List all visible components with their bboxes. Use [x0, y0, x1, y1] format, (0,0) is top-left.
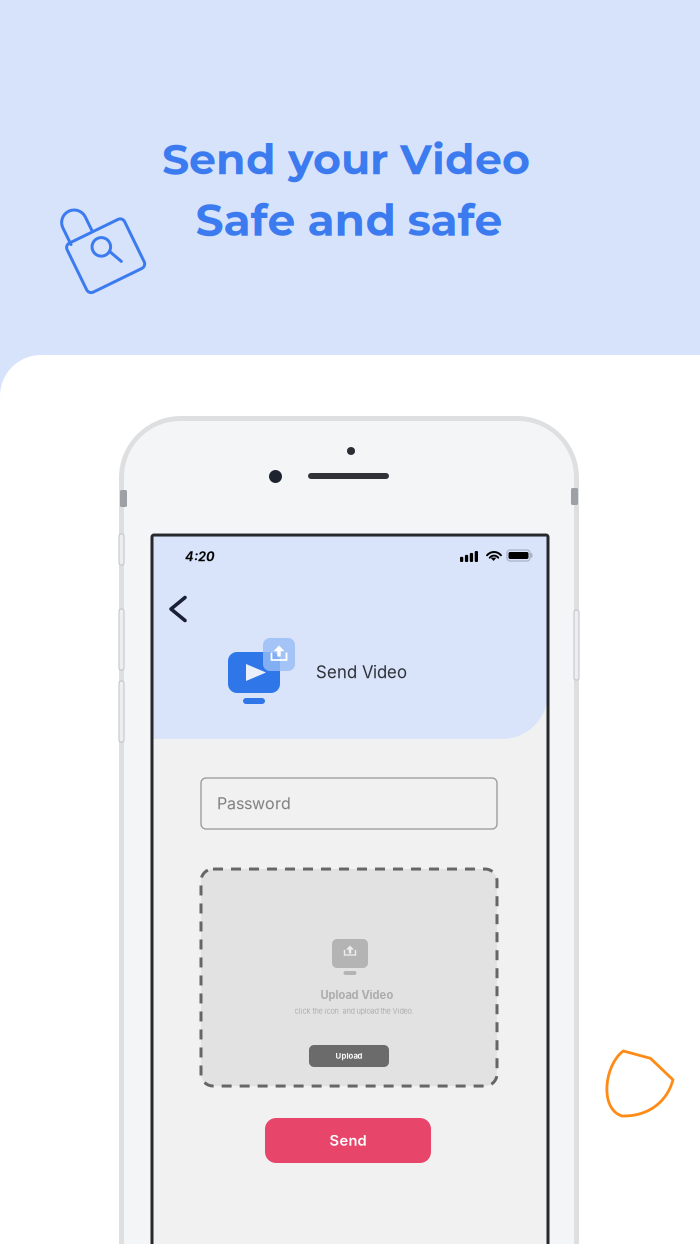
staticText: Upload Video	[320, 988, 393, 1002]
staticText: Send	[329, 1132, 366, 1149]
button[interactable]: Upload	[309, 1045, 389, 1067]
button[interactable]: Send	[265, 1118, 431, 1163]
staticText: Password	[217, 794, 291, 813]
staticText: Send your Video	[162, 133, 530, 185]
staticText: click the icon and upload the Video.	[294, 1007, 413, 1015]
staticText: 4:20	[185, 549, 215, 564]
staticText: Safe and safe	[195, 193, 502, 247]
staticText: Upload	[335, 1051, 362, 1061]
button[interactable]: Back	[155, 586, 201, 632]
staticText: Send Video	[316, 662, 407, 682]
